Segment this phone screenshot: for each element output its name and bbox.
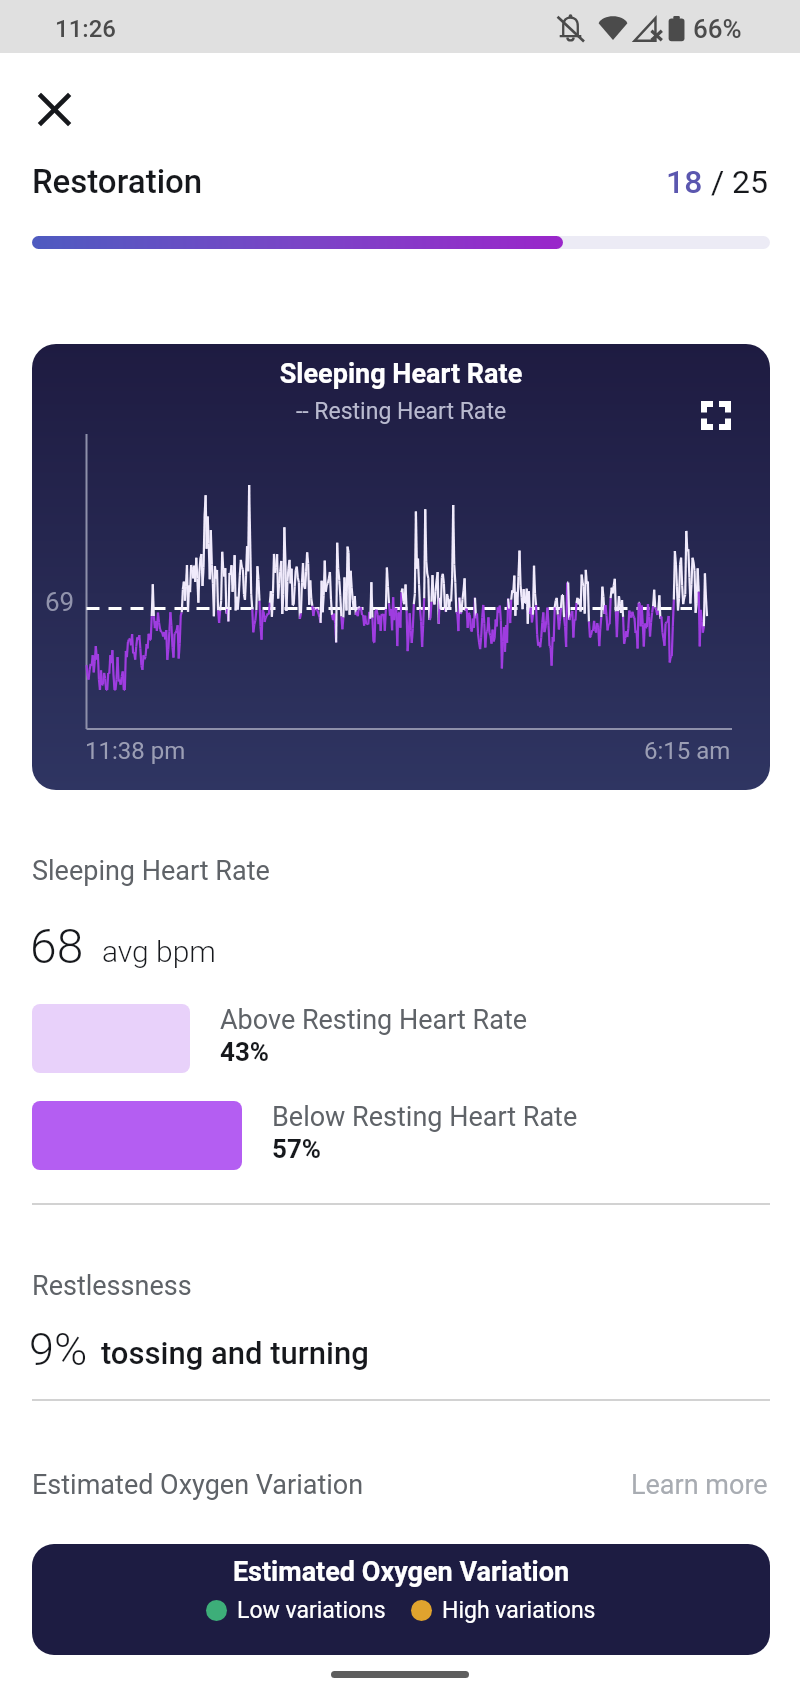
- staticText: 9%: [29, 1323, 88, 1376]
- staticText: High variations: [442, 1597, 596, 1624]
- staticText: Restlessness: [32, 1270, 192, 1302]
- button[interactable]: Close: [30, 85, 78, 133]
- button[interactable]: Learn more: [631, 1469, 768, 1501]
- button[interactable]: Sleeping Heart Rate: [32, 344, 770, 790]
- staticText: 11:26: [55, 15, 116, 43]
- staticText: Sleeping Heart Rate: [32, 855, 270, 887]
- staticText: 68: [30, 918, 84, 974]
- staticText: 66%: [693, 14, 742, 44]
- staticText: Low variations: [237, 1597, 386, 1624]
- staticText: Below Resting Heart Rate: [272, 1101, 578, 1133]
- staticText: 6:15 am: [644, 737, 731, 765]
- staticText: / 25: [703, 163, 769, 201]
- staticText: 43%: [220, 1037, 270, 1067]
- staticText: 11:38 pm: [85, 737, 186, 765]
- staticText: Sleeping Heart Rate: [32, 358, 770, 390]
- staticText: 69: [45, 587, 75, 617]
- staticText: -- Resting Heart Rate: [32, 398, 770, 425]
- staticText: Learn more: [631, 1469, 768, 1501]
- button[interactable]: Estimated Oxygen Variation: [32, 1544, 770, 1655]
- staticText: 18: [666, 163, 703, 201]
- staticText: Above Resting Heart Rate: [220, 1004, 528, 1036]
- button[interactable]: Expand chart: [692, 391, 740, 439]
- staticText: Restoration: [32, 162, 203, 201]
- staticText: Estimated Oxygen Variation: [32, 1469, 364, 1501]
- staticText: Estimated Oxygen Variation: [32, 1556, 770, 1588]
- staticText: tossing and turning: [101, 1335, 369, 1371]
- staticText: 57%: [272, 1134, 322, 1164]
- staticText: avg bpm: [102, 934, 216, 969]
